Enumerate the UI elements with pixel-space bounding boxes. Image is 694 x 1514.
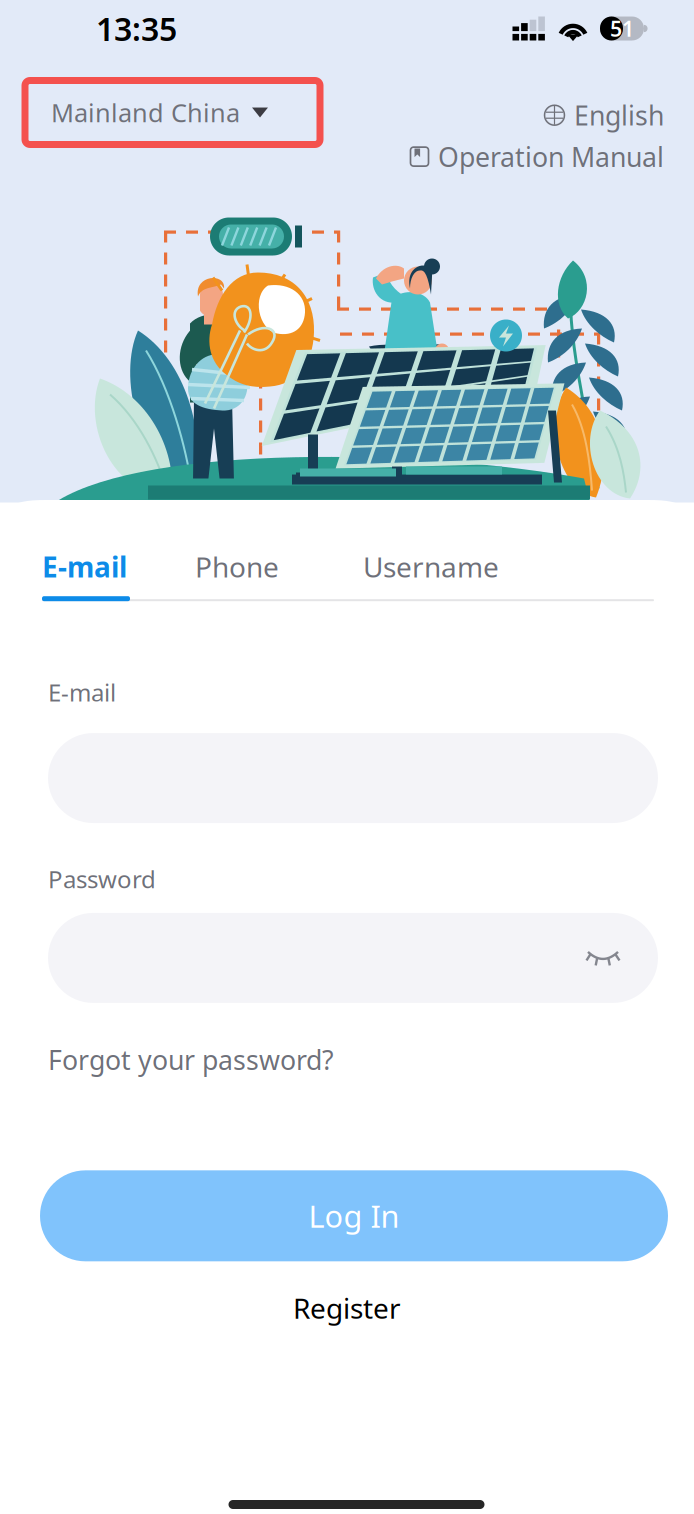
button[interactable]: Register [0, 1261, 694, 1326]
staticText: Mainland China [51, 96, 240, 129]
staticText: 51 [610, 14, 634, 43]
staticText: Log In [308, 1195, 399, 1236]
button[interactable]: Operation Manual [410, 139, 664, 174]
staticText: English [574, 97, 664, 133]
button[interactable]: Mainland China [25, 80, 320, 144]
button[interactable]: E-mail [42, 548, 129, 601]
button[interactable]: Username [279, 548, 499, 601]
staticText: Username [363, 548, 499, 585]
button[interactable]: English [544, 97, 664, 133]
button[interactable]: Phone [129, 548, 279, 601]
staticText: Password [48, 863, 156, 895]
button[interactable]: Forgot your password? [0, 1003, 334, 1077]
staticText: E-mail [42, 548, 127, 585]
button[interactable]: Log In [0, 1077, 694, 1261]
staticText: Phone [195, 548, 279, 585]
staticText: E-mail [48, 676, 116, 708]
staticText: Operation Manual [438, 139, 664, 174]
staticText: 13:35 [96, 7, 177, 50]
staticText: Register [293, 1289, 401, 1326]
staticText: Forgot your password? [48, 1042, 334, 1077]
button[interactable]: Show password [586, 915, 658, 1001]
